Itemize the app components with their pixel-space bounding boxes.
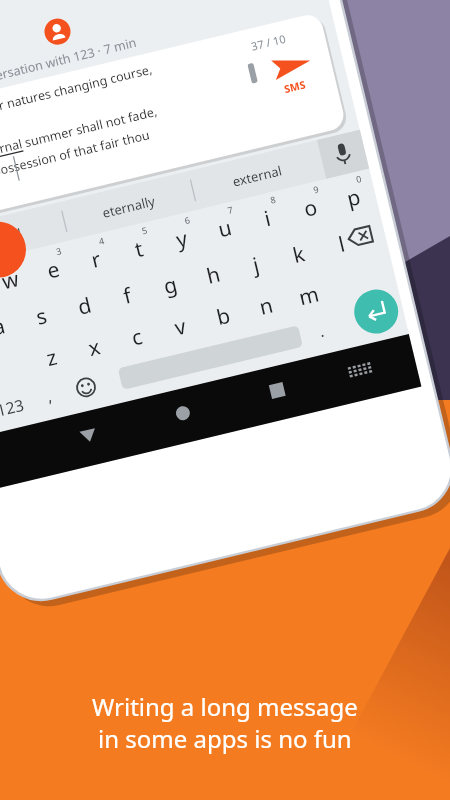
button[interactable]: Writing a long message in some apps is n… bbox=[0, 0, 450, 800]
